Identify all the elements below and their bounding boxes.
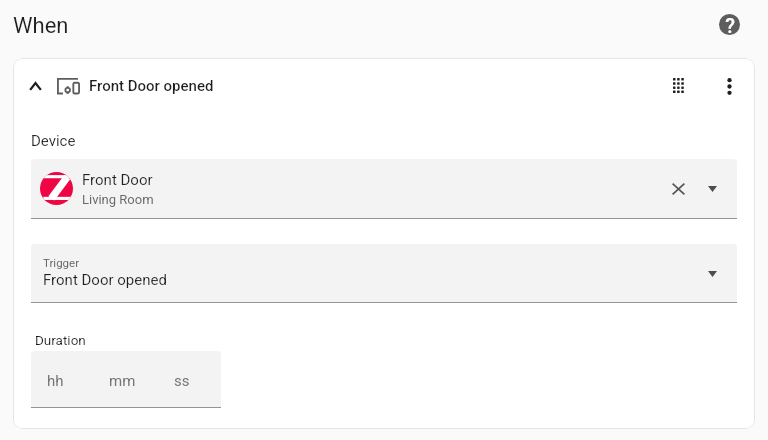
staticText: When [13,13,69,39]
staticText: Living Room [82,192,154,207]
staticText: Front Door opened [89,77,214,95]
button[interactable]: hh [31,351,221,408]
staticText: hh [47,372,64,390]
staticText: Front Door [82,171,153,189]
staticText: Duration [35,332,86,348]
staticText: Front Door opened [43,271,167,289]
button[interactable]: Clear [661,171,696,206]
button[interactable]: Reorder [661,68,697,104]
button[interactable]: Front Door [31,159,737,219]
button[interactable]: Trigger [31,244,737,303]
staticText: Trigger [43,256,80,269]
staticText: ? [725,14,735,35]
button[interactable]: Help [711,6,748,43]
staticText: Device [31,132,76,150]
button[interactable]: Open trigger dropdown [695,256,730,291]
button[interactable]: More options [711,68,747,104]
button[interactable]: Open device dropdown [695,171,730,206]
button[interactable]: Front Door opened [13,58,755,114]
staticText: ss [174,372,190,390]
staticText: mm [109,372,136,390]
